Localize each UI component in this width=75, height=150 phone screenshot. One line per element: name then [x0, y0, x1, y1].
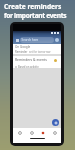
staticText: Reminder [15, 50, 29, 54]
staticText: Create reminders [4, 2, 62, 11]
button[interactable]: Home [15, 128, 24, 137]
staticText: set for tomorrow [29, 50, 51, 54]
staticText: On Google [15, 45, 31, 49]
staticText: Based on activity [18, 65, 39, 68]
button[interactable]: Account [55, 38, 59, 42]
button[interactable]: Reminders & events [13, 56, 61, 68]
button[interactable]: Add reminder [52, 119, 59, 126]
staticText: Search here [20, 38, 39, 42]
button[interactable]: Menu [15, 38, 20, 43]
button[interactable]: Reminder [15, 50, 59, 54]
button[interactable]: Search here [20, 37, 54, 43]
staticText: Reminders & events [15, 57, 47, 62]
staticText: for important events [4, 11, 67, 20]
button[interactable]: Search [50, 128, 59, 137]
button[interactable]: Saved [27, 128, 36, 137]
button[interactable]: Updates [38, 128, 47, 137]
